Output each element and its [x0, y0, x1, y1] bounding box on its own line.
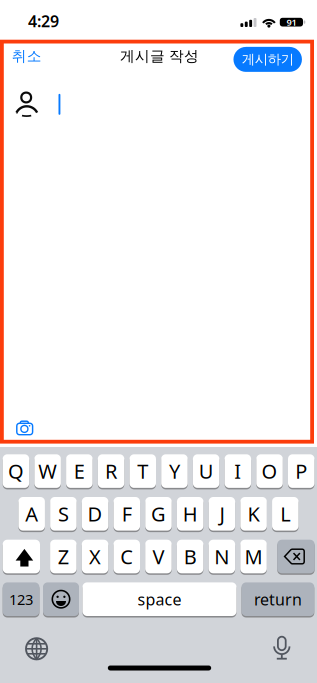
button[interactable]: space: [82, 582, 236, 616]
staticText: Y: [169, 458, 180, 484]
staticText: C: [120, 543, 133, 570]
staticText: I: [234, 458, 241, 484]
staticText: P: [295, 458, 307, 484]
staticText: M: [245, 543, 263, 570]
button[interactable]: U: [193, 454, 219, 488]
button[interactable]: G: [145, 497, 172, 531]
staticText: G: [151, 500, 166, 527]
button[interactable]: Numbers: [3, 582, 39, 616]
staticText: 123: [9, 589, 33, 609]
staticText: E: [74, 458, 85, 484]
button[interactable]: T: [129, 454, 156, 488]
button[interactable]: C: [113, 540, 140, 573]
button[interactable]: M: [240, 540, 267, 573]
staticText: R: [105, 458, 117, 484]
staticText: X: [89, 543, 101, 570]
button[interactable]: Q: [3, 454, 29, 488]
staticText: S: [58, 500, 69, 527]
staticText: D: [88, 500, 103, 527]
button[interactable]: 사진 추가: [14, 418, 38, 438]
button[interactable]: H: [177, 497, 203, 531]
button[interactable]: D: [82, 497, 108, 531]
button[interactable]: L: [272, 497, 299, 531]
button[interactable]: K: [240, 497, 267, 531]
staticText: 91: [286, 16, 296, 28]
staticText: K: [248, 500, 260, 527]
button[interactable]: 게시하기: [233, 47, 302, 72]
button[interactable]: B: [177, 540, 203, 573]
button[interactable]: Z: [50, 540, 77, 573]
staticText: U: [199, 458, 214, 484]
staticText: A: [25, 500, 38, 527]
staticText: F: [122, 500, 132, 527]
button[interactable]: N: [209, 540, 235, 573]
staticText: O: [262, 458, 278, 484]
button[interactable]: Next keyboard: [24, 636, 50, 662]
staticText: T: [137, 458, 148, 484]
button[interactable]: Delete: [277, 540, 315, 573]
button[interactable]: A: [18, 497, 45, 531]
staticText: W: [38, 458, 57, 484]
staticText: 게시글 작성: [120, 47, 199, 65]
button[interactable]: 취소: [12, 47, 42, 65]
staticText: 취소: [12, 47, 42, 65]
button[interactable]: S: [50, 497, 77, 531]
staticText: L: [280, 500, 290, 527]
button[interactable]: V: [145, 540, 172, 573]
button[interactable]: return: [241, 582, 314, 616]
button[interactable]: F: [113, 497, 140, 531]
button[interactable]: J: [209, 497, 235, 531]
button[interactable]: Emoji: [43, 582, 79, 616]
staticText: V: [152, 543, 164, 570]
staticText: Q: [8, 458, 24, 484]
staticText: B: [184, 543, 197, 570]
button[interactable]: I: [225, 454, 251, 488]
staticText: 게시하기: [242, 51, 294, 68]
button[interactable]: Dictate: [272, 636, 292, 662]
staticText: J: [219, 500, 224, 527]
button[interactable]: Y: [161, 454, 188, 488]
button[interactable]: O: [256, 454, 283, 488]
staticText: Z: [58, 543, 69, 570]
staticText: 4:29: [28, 10, 59, 32]
staticText: return: [254, 589, 302, 610]
button[interactable]: E: [66, 454, 93, 488]
button[interactable]: W: [34, 454, 61, 488]
button[interactable]: X: [82, 540, 108, 573]
staticText: space: [137, 589, 181, 610]
staticText: H: [183, 500, 198, 527]
button[interactable]: Shift: [3, 540, 40, 573]
button[interactable]: P: [288, 454, 314, 488]
button[interactable]: R: [98, 454, 124, 488]
staticText: N: [214, 543, 229, 570]
